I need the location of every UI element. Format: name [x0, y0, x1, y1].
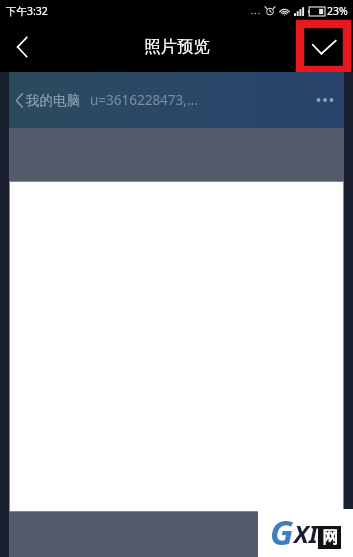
- staticText: XI: [294, 517, 318, 550]
- button[interactable]: 返回: [0, 21, 44, 72]
- staticText: 下午3:32: [6, 4, 48, 18]
- button[interactable]: 更多: [312, 87, 338, 113]
- staticText: 网: [322, 528, 338, 548]
- staticText: system.com: [282, 548, 348, 550]
- staticText: 照片预览: [144, 36, 210, 57]
- staticText: u=3616228473,...: [90, 91, 198, 109]
- staticText: 我的电脑: [26, 92, 80, 109]
- staticText: G: [270, 509, 294, 555]
- button[interactable]: 我的电脑: [15, 92, 80, 109]
- staticText: 23%: [327, 4, 348, 18]
- button[interactable]: 确定: [300, 24, 347, 70]
